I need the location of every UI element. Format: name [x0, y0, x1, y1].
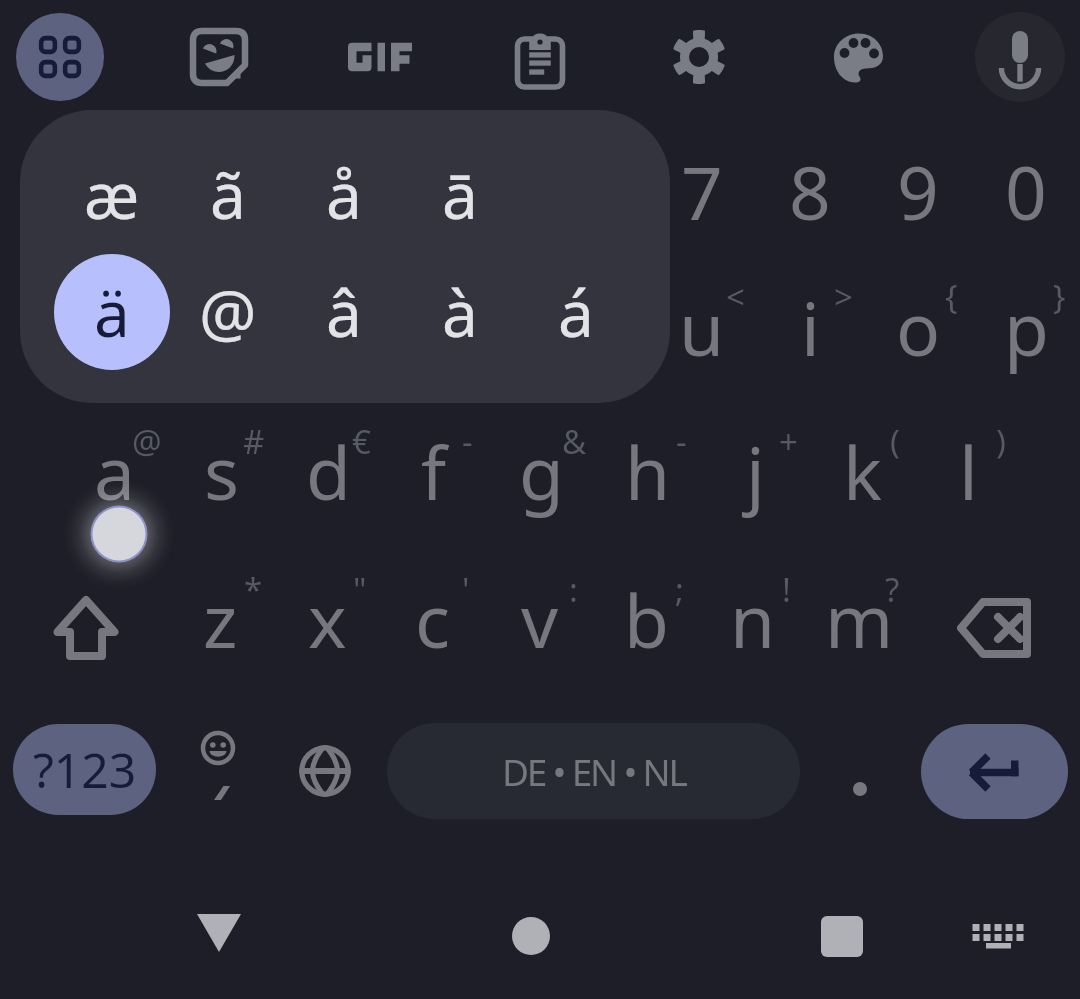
staticText: j — [746, 422, 765, 521]
staticText: m — [825, 570, 894, 669]
staticText: q — [32, 278, 77, 377]
staticText: k — [843, 422, 882, 521]
button[interactable]: 7 — [648, 129, 756, 253]
staticText: ? — [885, 567, 900, 612]
staticText: > — [834, 274, 853, 319]
staticText: @ — [199, 269, 257, 356]
button[interactable]: @ — [170, 254, 286, 370]
button[interactable]: x — [273, 557, 381, 681]
staticText: â — [326, 269, 362, 356]
button[interactable]: æ — [54, 136, 170, 252]
button[interactable]: 0 — [972, 129, 1080, 253]
button[interactable]: Enter — [921, 724, 1068, 819]
staticText: < — [726, 274, 745, 319]
staticText: h — [625, 422, 671, 521]
staticText: : — [569, 567, 578, 612]
button[interactable]: m — [805, 557, 913, 681]
staticText: & — [562, 419, 587, 464]
button[interactable]: s — [167, 409, 275, 533]
staticText: 9 — [897, 142, 939, 241]
button[interactable]: Switch keyboard — [944, 882, 1052, 990]
button[interactable]: Space — [387, 723, 800, 819]
button[interactable]: 5 — [432, 129, 540, 253]
staticText: u — [679, 278, 725, 377]
staticText: l — [959, 422, 978, 521]
button[interactable]: i — [756, 265, 864, 389]
button[interactable]: t — [432, 265, 540, 389]
button[interactable]: n — [699, 557, 807, 681]
button[interactable]: å — [286, 136, 402, 252]
button[interactable]: GIF — [335, 12, 425, 102]
button[interactable]: Apps — [16, 13, 104, 101]
button[interactable]: r — [324, 265, 432, 389]
button[interactable]: 4 — [324, 129, 432, 253]
button[interactable]: Recents — [788, 882, 896, 990]
button[interactable]: à — [402, 254, 518, 370]
button[interactable]: Shift — [21, 566, 151, 690]
button[interactable]: ã — [170, 136, 286, 252]
staticText: ã — [210, 151, 246, 238]
staticText: æ — [84, 151, 140, 238]
button[interactable]: Change language — [271, 717, 379, 825]
button[interactable]: l — [914, 409, 1022, 533]
button[interactable]: z — [166, 557, 274, 681]
staticText: y — [575, 278, 613, 377]
button[interactable]: ä — [54, 254, 170, 370]
button[interactable]: â — [286, 254, 402, 370]
button[interactable]: y — [540, 265, 648, 389]
button[interactable]: Voice input — [975, 12, 1065, 102]
button[interactable]: f — [380, 409, 488, 533]
staticText: ā — [442, 151, 478, 238]
button[interactable]: k — [808, 409, 916, 533]
button[interactable]: 3 — [216, 129, 324, 253]
button[interactable]: Themes — [814, 12, 904, 102]
button[interactable]: Symbols — [13, 724, 156, 815]
staticText: e — [249, 278, 291, 377]
button[interactable]: 2 — [108, 129, 216, 253]
button[interactable]: j — [701, 409, 809, 533]
button[interactable]: Emoji — [158, 701, 278, 841]
staticText: DE • EN • NL — [502, 746, 686, 796]
button[interactable]: c — [379, 557, 487, 681]
staticText: p — [1004, 278, 1049, 377]
button[interactable]: b — [592, 557, 700, 681]
staticText: ! — [782, 567, 791, 612]
staticText: @ — [132, 419, 162, 464]
button[interactable]: Home — [477, 882, 585, 990]
button[interactable]: h — [594, 409, 702, 533]
button[interactable]: u — [648, 265, 756, 389]
staticText: à — [442, 269, 478, 356]
button[interactable]: q — [0, 265, 108, 389]
staticText: 5 — [465, 142, 507, 241]
button[interactable]: o — [864, 265, 972, 389]
button[interactable]: a — [60, 409, 168, 533]
staticText: - — [462, 419, 473, 464]
staticText: ?123 — [33, 737, 137, 802]
button[interactable]: e — [216, 265, 324, 389]
button[interactable]: w — [108, 265, 216, 389]
button[interactable]: g — [487, 409, 595, 533]
button[interactable]: ā — [402, 136, 518, 252]
button[interactable]: á — [518, 254, 634, 370]
staticText: a — [94, 422, 135, 521]
button[interactable]: 8 — [756, 129, 864, 253]
button[interactable]: 9 — [864, 129, 972, 253]
staticText: å — [326, 151, 362, 238]
button[interactable]: Period — [806, 735, 914, 843]
staticText: ' — [462, 567, 470, 612]
staticText: 0 — [1005, 142, 1047, 241]
button[interactable]: p — [972, 265, 1080, 389]
button[interactable]: Stickers — [174, 12, 264, 102]
button[interactable]: v — [486, 557, 594, 681]
button[interactable]: d — [274, 409, 382, 533]
button[interactable]: Hide keyboard — [165, 880, 273, 988]
button[interactable]: Clipboard — [495, 15, 585, 105]
staticText: # — [243, 419, 265, 464]
staticText: c — [415, 570, 451, 669]
button[interactable]: Settings — [654, 12, 744, 102]
button[interactable]: 1 — [0, 129, 108, 253]
button[interactable]: Backspace — [929, 566, 1059, 690]
